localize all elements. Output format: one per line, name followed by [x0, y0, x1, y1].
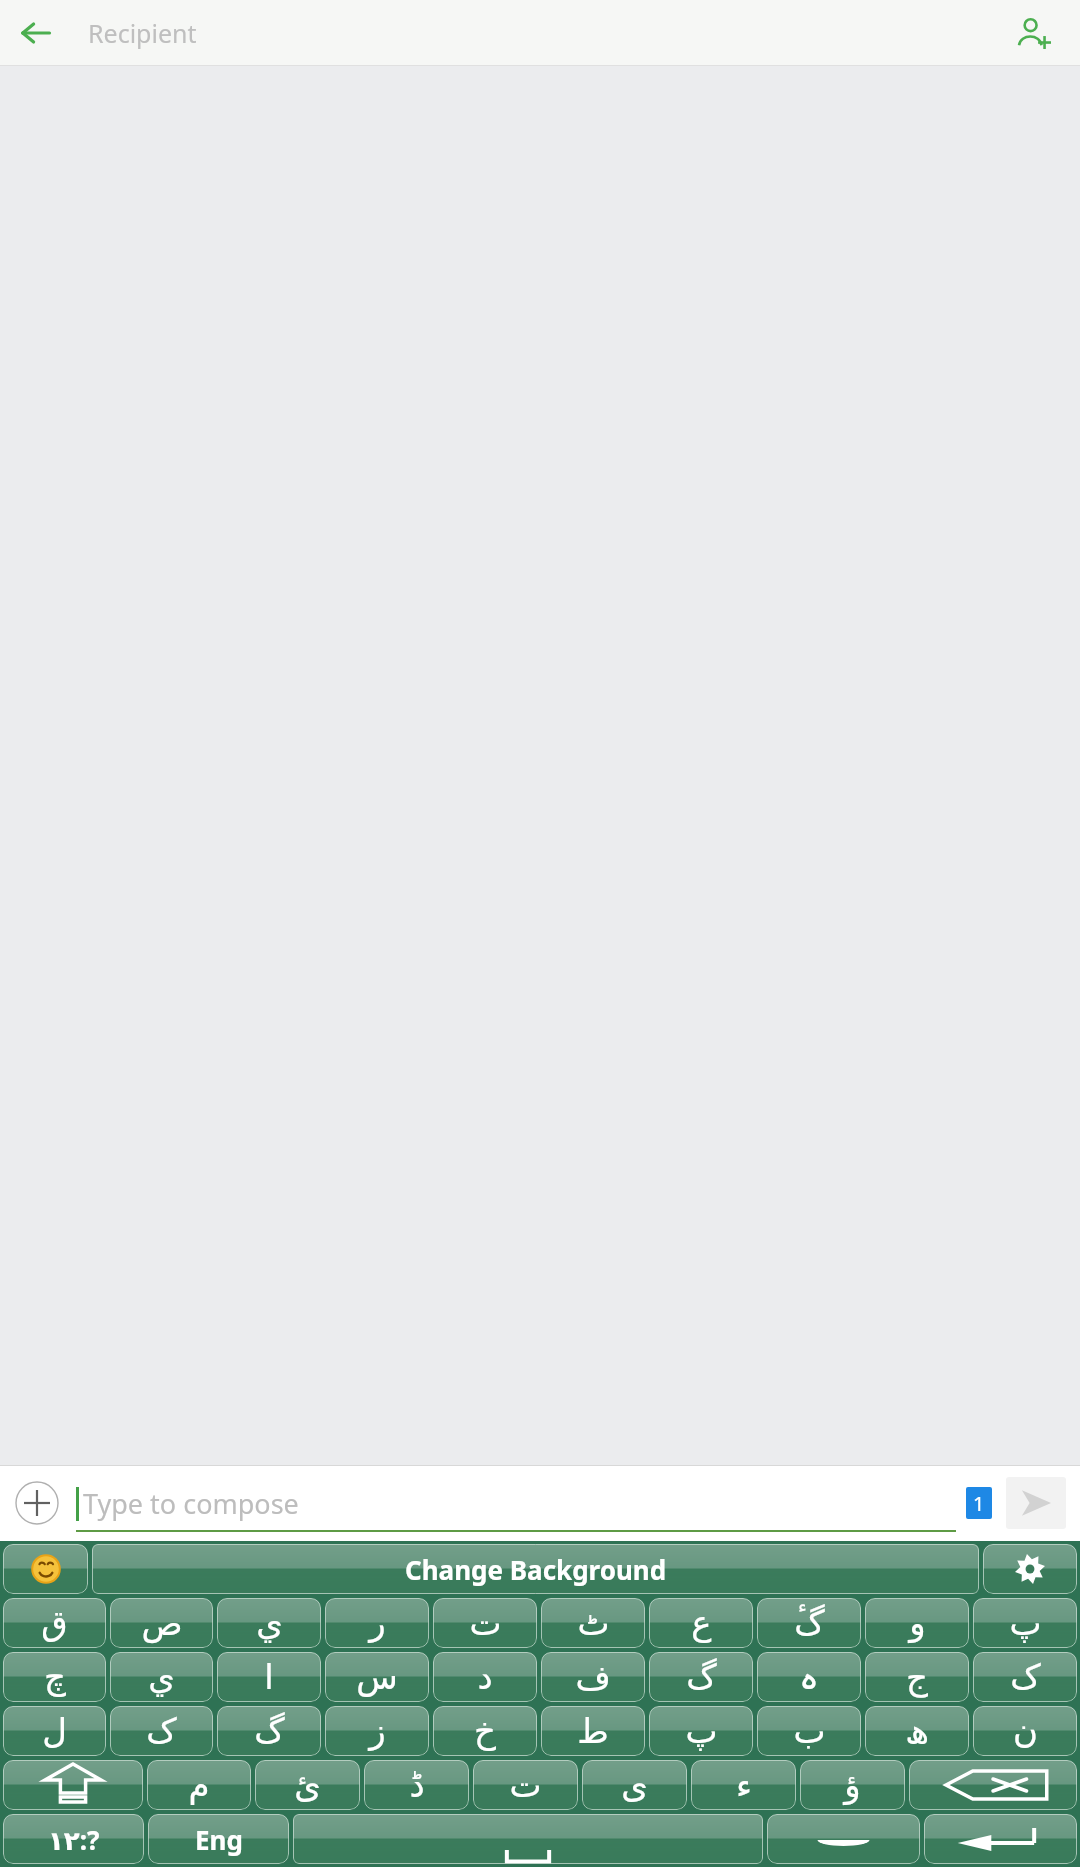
button[interactable]: Attach	[14, 1480, 60, 1526]
staticText: گ	[686, 1657, 717, 1697]
button[interactable]: ز	[325, 1706, 429, 1756]
staticText: ص	[141, 1603, 183, 1643]
other: Shift	[3, 1760, 143, 1810]
button[interactable]: ہ	[757, 1652, 861, 1702]
button[interactable]: ڈ	[364, 1760, 469, 1810]
button[interactable]: ء	[691, 1760, 796, 1810]
button[interactable]: ق	[3, 1598, 106, 1648]
button[interactable]: ط	[541, 1706, 645, 1756]
button[interactable]: Back	[10, 7, 62, 59]
staticText: س	[356, 1657, 398, 1697]
button[interactable]: ی	[582, 1760, 687, 1810]
staticText: ي	[256, 1603, 283, 1643]
button[interactable]: ئ	[255, 1760, 360, 1810]
staticText: Type to compose	[83, 1485, 299, 1522]
staticText: چ	[44, 1657, 66, 1697]
button[interactable]: ت	[433, 1598, 537, 1648]
button[interactable]: ک	[973, 1652, 1077, 1702]
button[interactable]	[3, 1544, 88, 1594]
button[interactable]: پ	[649, 1706, 753, 1756]
button[interactable]	[983, 1544, 1077, 1594]
staticText: ہ	[799, 1657, 819, 1697]
staticText: ط	[577, 1711, 609, 1751]
button[interactable]: ت	[473, 1760, 578, 1810]
staticText: ن	[1013, 1711, 1038, 1751]
button[interactable]: Eng	[148, 1814, 289, 1864]
staticText: گٔ	[794, 1603, 825, 1643]
staticText: Eng	[195, 1822, 243, 1857]
staticText: ت	[469, 1603, 502, 1643]
staticText: ر	[369, 1603, 386, 1643]
button[interactable]: ي	[110, 1652, 213, 1702]
button[interactable]: ب	[757, 1706, 861, 1756]
staticText: ھ	[905, 1711, 929, 1751]
button[interactable]: ل	[3, 1706, 106, 1756]
button[interactable]: ص	[110, 1598, 213, 1648]
staticText: ک	[146, 1711, 177, 1751]
staticText: ک	[1010, 1657, 1041, 1697]
button[interactable]: Send	[1006, 1477, 1066, 1529]
other: Enter	[924, 1814, 1077, 1864]
button[interactable]: چ	[3, 1652, 106, 1702]
button[interactable]: Space	[293, 1814, 763, 1864]
button[interactable]: خ	[433, 1706, 537, 1756]
button[interactable]: ا	[217, 1652, 321, 1702]
button[interactable]: Change Background	[92, 1544, 979, 1594]
staticText: Change Background	[405, 1552, 667, 1587]
button[interactable]: گ	[217, 1706, 321, 1756]
button[interactable]: م	[147, 1760, 251, 1810]
other: Space	[293, 1814, 763, 1864]
other: Backspace	[909, 1760, 1077, 1810]
staticText: ا	[264, 1657, 274, 1697]
staticText: ت	[509, 1765, 542, 1805]
button[interactable]: Shift	[3, 1760, 143, 1810]
button[interactable]: و	[865, 1598, 969, 1648]
button[interactable]: ؤ	[800, 1760, 905, 1810]
button[interactable]: Symbols	[767, 1814, 920, 1864]
button[interactable]: ن	[973, 1706, 1077, 1756]
button[interactable]: گ	[649, 1652, 753, 1702]
button[interactable]: ھ	[865, 1706, 969, 1756]
button[interactable]: ٹ	[541, 1598, 645, 1648]
button[interactable]: ي	[217, 1598, 321, 1648]
button[interactable]: س	[325, 1652, 429, 1702]
staticText: ج	[906, 1657, 928, 1697]
button[interactable]: ر	[325, 1598, 429, 1648]
button[interactable]: Add recipient	[1006, 5, 1062, 61]
button[interactable]: ع	[649, 1598, 753, 1648]
staticText: گ	[254, 1711, 285, 1751]
button[interactable]: Enter	[924, 1814, 1077, 1864]
staticText: ق	[41, 1603, 68, 1643]
staticText: ئ	[294, 1765, 321, 1805]
staticText: ١٢:?	[48, 1822, 100, 1857]
staticText: ي	[148, 1657, 175, 1697]
staticText: ل	[42, 1711, 67, 1751]
staticText: ٹ	[577, 1603, 610, 1643]
staticText: ب	[793, 1711, 826, 1751]
staticText: خ	[474, 1711, 496, 1751]
staticText: ف	[575, 1657, 611, 1697]
staticText: ڈ	[409, 1765, 425, 1805]
button[interactable]: ج	[865, 1652, 969, 1702]
staticText: م	[188, 1765, 210, 1805]
staticText: ز	[369, 1711, 386, 1751]
staticText: 1	[973, 1490, 985, 1517]
staticText: Recipient	[88, 16, 197, 50]
button[interactable]: د	[433, 1652, 537, 1702]
staticText: د	[477, 1657, 493, 1697]
button[interactable]: Backspace	[909, 1760, 1077, 1810]
button[interactable]: پ	[973, 1598, 1077, 1648]
button[interactable]: ف	[541, 1652, 645, 1702]
staticText: پ	[1009, 1603, 1042, 1643]
button[interactable]: گٔ	[757, 1598, 861, 1648]
staticText: ء	[736, 1765, 752, 1805]
staticText: و	[909, 1603, 926, 1643]
staticText: ی	[621, 1765, 648, 1805]
staticText: ع	[691, 1603, 712, 1643]
other: Symbols	[767, 1814, 920, 1864]
staticText: ؤ	[844, 1765, 861, 1805]
button[interactable]: ک	[110, 1706, 213, 1756]
staticText: پ	[685, 1711, 718, 1751]
button[interactable]: ١٢:?	[3, 1814, 144, 1864]
